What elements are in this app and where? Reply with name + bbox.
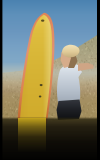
button[interactable] <box>0 0 100 160</box>
